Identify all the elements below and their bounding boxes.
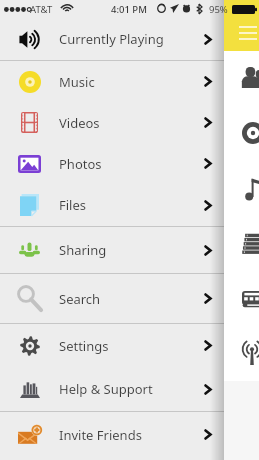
button[interactable]: Invite Friends — [0, 412, 224, 457]
staticText: Videos — [59, 114, 100, 132]
staticText: Music — [59, 73, 95, 91]
staticText: AT&T — [30, 3, 53, 16]
button[interactable]: Photos — [0, 143, 224, 184]
button[interactable]: Music — [0, 61, 224, 102]
button[interactable]: Videos — [0, 102, 224, 143]
staticText: Settings — [59, 337, 109, 355]
button[interactable]: Help & Support — [0, 367, 224, 411]
staticText: Invite Friends — [59, 426, 142, 444]
button[interactable]: Settings — [0, 324, 224, 367]
staticText: Help & Support — [59, 380, 153, 398]
staticText: Currently Playing — [59, 30, 164, 48]
button[interactable]: Menu — [239, 26, 257, 40]
staticText: Search — [59, 290, 101, 308]
staticText: Sharing — [59, 241, 107, 259]
button[interactable]: Sharing — [0, 227, 224, 273]
button[interactable]: Search — [0, 274, 224, 323]
button[interactable]: Files — [0, 184, 224, 226]
staticText: Files — [59, 196, 87, 214]
staticText: Photos — [59, 155, 102, 173]
button[interactable]: Currently Playing — [0, 18, 224, 60]
staticText: 4:01 PM — [111, 3, 147, 16]
staticText: 95% — [209, 3, 228, 16]
